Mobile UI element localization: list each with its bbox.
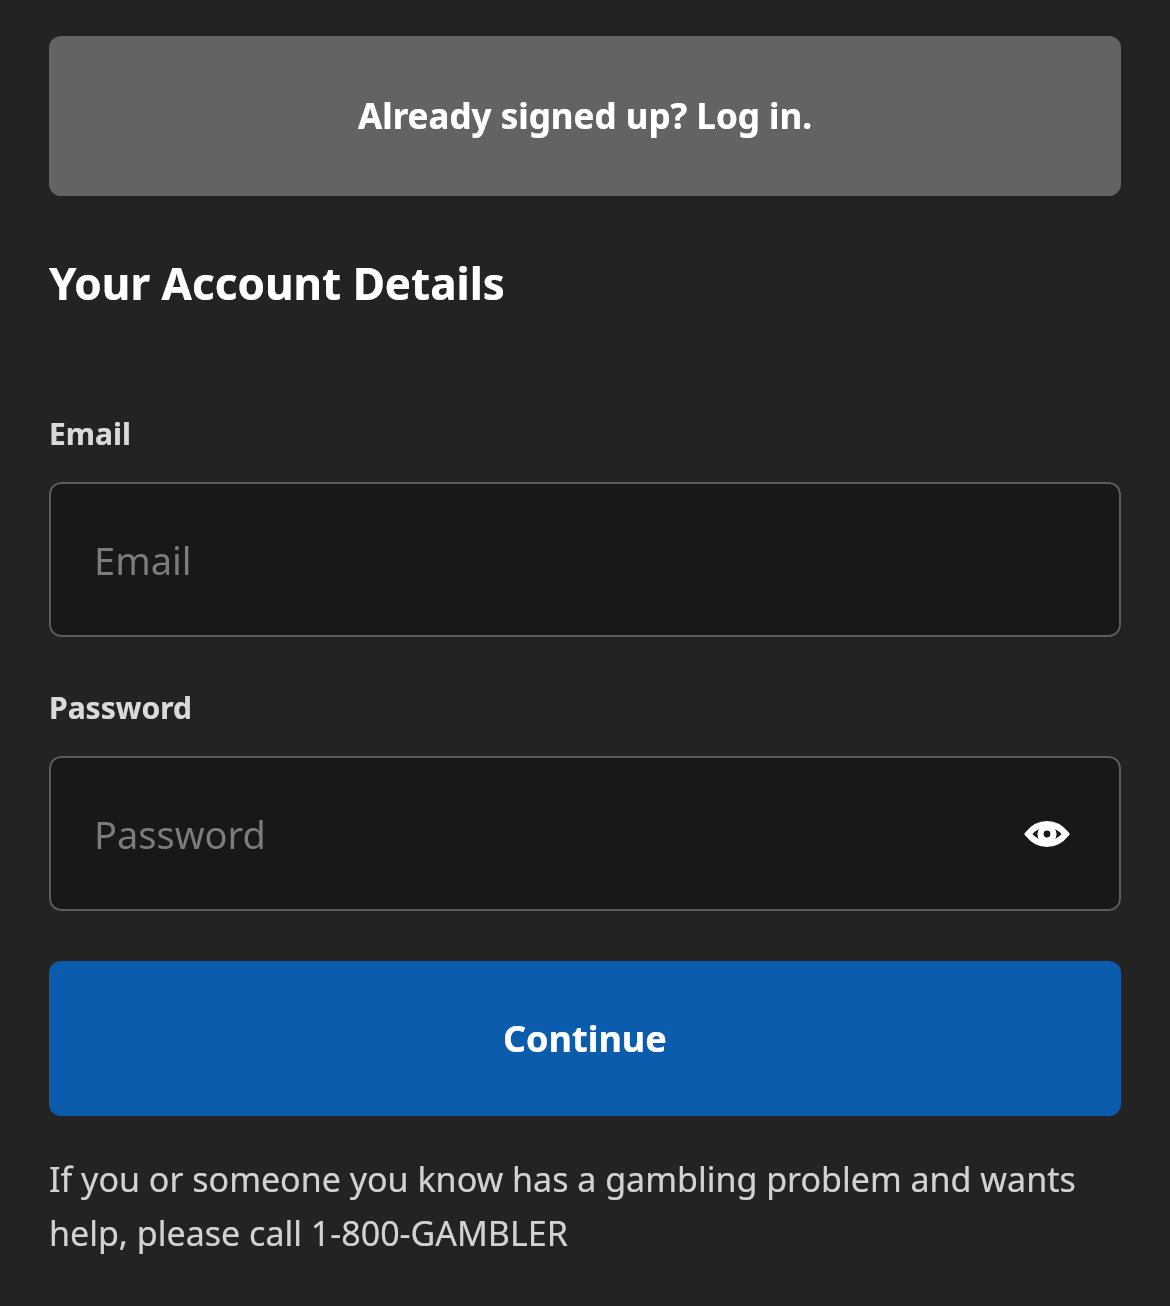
staticText: Already signed up? Log in.	[358, 92, 813, 140]
button[interactable]: Continue	[49, 961, 1121, 1116]
staticText: Continue	[503, 1014, 667, 1063]
staticText: Password	[49, 687, 192, 728]
button[interactable]: Show password	[1019, 806, 1075, 862]
button[interactable]: Already signed up? Log in.	[49, 36, 1121, 196]
button[interactable]: Password	[49, 756, 1121, 911]
staticText: Email	[49, 413, 131, 454]
staticText: Email	[94, 534, 192, 586]
staticText: If you or someone you know has a gamblin…	[49, 1156, 1121, 1256]
staticText: Your Account Details	[49, 253, 505, 313]
button[interactable]: Email	[49, 482, 1121, 637]
staticText: Password	[94, 808, 266, 860]
